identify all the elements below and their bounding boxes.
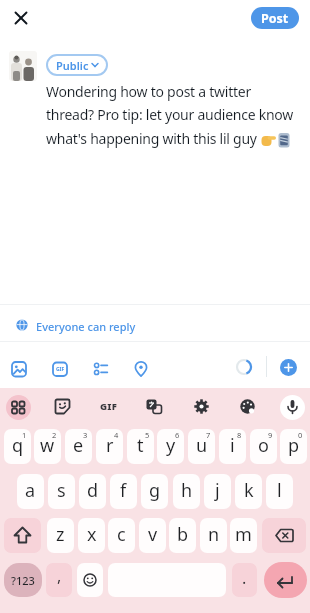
staticText: m [235, 522, 252, 547]
button[interactable]: g [141, 474, 168, 509]
staticText: v [148, 522, 158, 547]
staticText: c [117, 522, 126, 547]
staticText: g [149, 478, 161, 503]
button[interactable] [4, 518, 41, 553]
button[interactable]: d [79, 474, 106, 509]
staticText: GIF [100, 400, 118, 413]
staticText: 4 [114, 430, 119, 440]
staticText: u [196, 433, 208, 458]
button[interactable] [193, 398, 210, 415]
button[interactable] [77, 563, 103, 597]
staticText: 6 [175, 430, 180, 440]
button[interactable]: k [235, 474, 262, 509]
staticText: 9 [268, 430, 273, 440]
staticText: y [166, 433, 176, 458]
button[interactable] [280, 395, 305, 420]
staticText: h [181, 478, 193, 503]
button[interactable]: e [65, 429, 92, 464]
staticText: p [288, 433, 300, 458]
button[interactable] [239, 398, 256, 415]
staticText: d [87, 478, 99, 503]
button[interactable]: GIF [51, 360, 69, 378]
button[interactable] [92, 360, 110, 378]
staticText: k [244, 478, 254, 503]
staticText: Public [56, 58, 89, 73]
staticText: . [242, 567, 247, 589]
staticText: 8 [237, 430, 242, 440]
staticText: r [106, 433, 114, 458]
staticText: n [208, 522, 220, 547]
staticText: b [177, 522, 189, 547]
staticText: GIF [56, 366, 65, 373]
button[interactable]: i [219, 429, 246, 464]
staticText: t [137, 433, 144, 458]
button[interactable]: Public [46, 54, 108, 76]
staticText: q [12, 433, 24, 458]
button[interactable]: p [280, 429, 307, 464]
staticText: f [120, 478, 127, 503]
button[interactable]: z [47, 518, 74, 553]
staticText: Wondering how to post a twitter thread? … [46, 82, 294, 149]
button[interactable]: x [78, 518, 105, 553]
staticText: 3 [83, 430, 88, 440]
staticText: 5 [145, 430, 150, 440]
button[interactable]: u [188, 429, 215, 464]
staticText: x [87, 522, 97, 547]
button[interactable] [54, 398, 71, 415]
button[interactable]: y [157, 429, 184, 464]
staticText: l [277, 478, 282, 503]
button[interactable]: c [108, 518, 135, 553]
button[interactable]: . [232, 563, 257, 597]
staticText: a [25, 478, 36, 503]
staticText: e [73, 433, 84, 458]
button[interactable] [262, 518, 306, 553]
button[interactable]: a [17, 474, 44, 509]
staticText: 2 [52, 430, 57, 440]
staticText: o [258, 433, 269, 458]
staticText: , [57, 565, 62, 587]
button[interactable]: Post [251, 7, 299, 29]
button[interactable]: ?123 [4, 563, 42, 597]
staticText: j [215, 478, 220, 503]
button[interactable]: o [250, 429, 277, 464]
staticText: 7 [206, 430, 211, 440]
button[interactable]: m [230, 518, 257, 553]
button[interactable]: s [48, 474, 75, 509]
staticText: Post [261, 10, 289, 27]
button[interactable]: l [266, 474, 293, 509]
button[interactable]: Everyone can reply [10, 315, 170, 335]
button[interactable]: w [34, 429, 61, 464]
button[interactable]: f [110, 474, 137, 509]
button[interactable] [11, 8, 31, 28]
button[interactable]: b [169, 518, 196, 553]
staticText: i [230, 433, 235, 458]
staticText: s [57, 478, 66, 503]
button[interactable] [280, 359, 297, 376]
button[interactable]: GIF [96, 398, 122, 415]
button[interactable]: r [96, 429, 123, 464]
button[interactable] [145, 398, 163, 415]
button[interactable]: j [204, 474, 231, 509]
staticText: z [56, 522, 65, 547]
button[interactable]: v [139, 518, 166, 553]
button[interactable] [10, 360, 28, 378]
staticText: ?123 [11, 573, 35, 588]
button[interactable]: q [4, 429, 31, 464]
button[interactable]: , [46, 563, 72, 597]
staticText: 1 [22, 430, 27, 440]
staticText: w [40, 433, 55, 458]
button[interactable]: h [173, 474, 200, 509]
staticText: 0 [298, 430, 303, 440]
button[interactable] [132, 360, 150, 378]
button[interactable]: n [200, 518, 227, 553]
staticText: Everyone can reply [36, 319, 136, 334]
button[interactable]: t [127, 429, 154, 464]
button[interactable] [6, 395, 31, 420]
button[interactable] [264, 562, 307, 598]
